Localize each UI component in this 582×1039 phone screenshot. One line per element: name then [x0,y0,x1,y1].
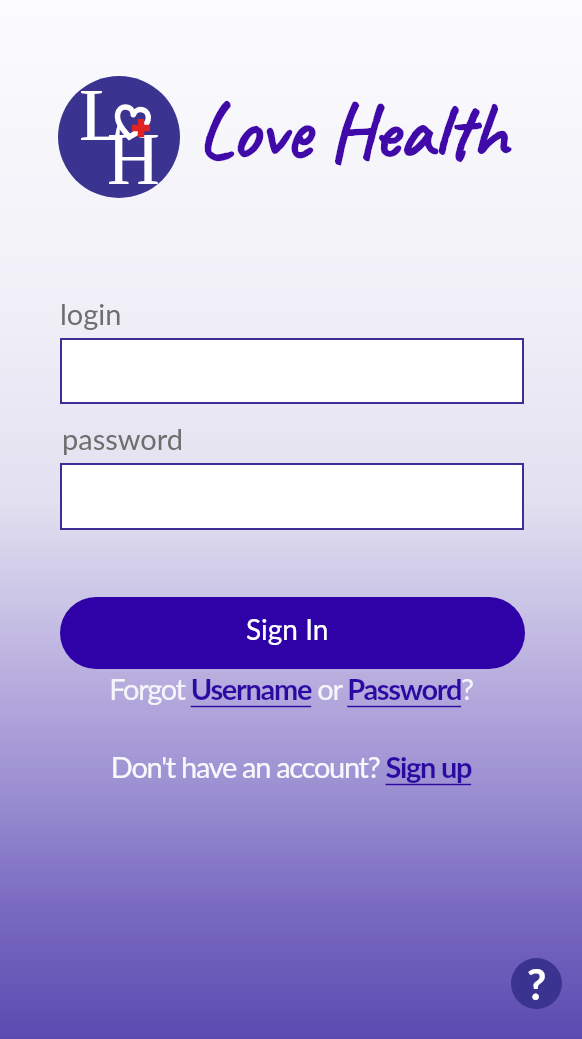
staticText: ? [527,959,547,1009]
staticText: Sign In [246,612,329,646]
staticText: password [62,421,184,456]
button[interactable] [60,338,524,404]
button[interactable]: Don't have an account? Sign up [0,749,582,784]
staticText: Love Health [198,82,538,180]
staticText: H [107,119,160,198]
button[interactable] [60,463,524,530]
button[interactable]: Sign In [60,597,525,669]
staticText: L [79,76,125,156]
staticText: login [60,296,122,331]
button[interactable]: ? [511,958,562,1009]
button[interactable]: Forgot Username or Password? [0,671,582,706]
